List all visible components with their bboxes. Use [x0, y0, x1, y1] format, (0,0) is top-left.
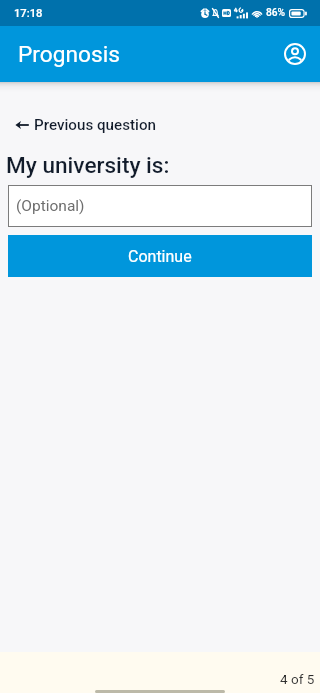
button[interactable]: Continue	[8, 235, 312, 277]
button[interactable]: Account	[275, 34, 315, 74]
staticText: (Optional)	[16, 197, 85, 215]
staticText: Previous question	[34, 116, 157, 134]
staticText: 4 of 5	[280, 671, 315, 687]
staticText: Continue	[128, 247, 192, 266]
button[interactable]: (Optional)	[8, 185, 312, 227]
staticText: My university is:	[6, 152, 170, 178]
staticText: 17:18	[14, 7, 43, 20]
button[interactable]: Previous question	[12, 116, 160, 134]
staticText: 86%	[266, 7, 286, 19]
staticText: Prognosis	[18, 41, 120, 68]
